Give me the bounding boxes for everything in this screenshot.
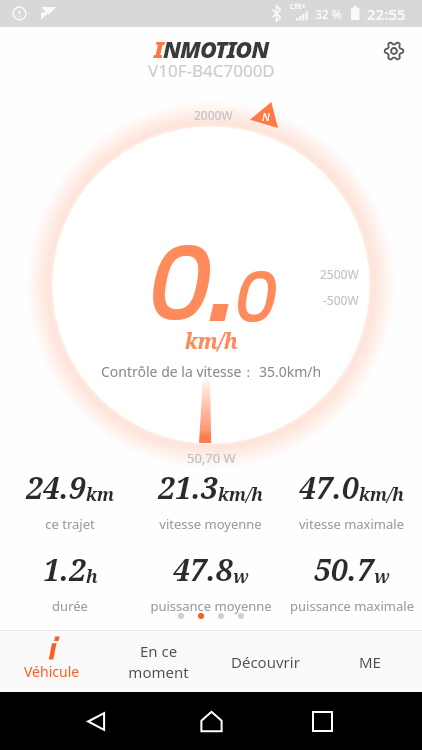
staticText: 0 <box>147 211 214 357</box>
staticText: Véhicule <box>24 662 80 681</box>
staticText: km/h <box>359 482 405 507</box>
staticText: 2000W <box>194 107 233 123</box>
button[interactable]: Back <box>74 699 118 743</box>
staticText: h <box>86 564 98 589</box>
staticText: En ce moment <box>128 641 189 683</box>
staticText: 0 <box>234 250 279 347</box>
button[interactable]: Véhicule <box>0 630 104 692</box>
staticText: km/h <box>218 482 264 507</box>
staticText: V10F-B4C7000D <box>148 59 275 82</box>
staticText: 50.7 <box>314 549 374 590</box>
button[interactable]: Home <box>189 699 233 743</box>
button[interactable]: Recent apps <box>300 699 344 743</box>
staticText: Contrôle de la vitesse： 35.0km/h <box>101 362 322 381</box>
staticText: Découvrir <box>231 652 300 672</box>
staticText: 24.9 <box>26 467 86 508</box>
button[interactable]: ME <box>318 630 422 692</box>
staticText: ME <box>359 652 381 672</box>
staticText: km/h <box>185 327 238 356</box>
staticText: 21.3 <box>158 467 218 508</box>
staticText: w <box>374 564 390 589</box>
staticText: NMOTION <box>163 33 269 64</box>
staticText: ce trajet <box>45 515 95 533</box>
staticText: puissance maximale <box>290 597 414 615</box>
staticText: 2500W <box>320 266 359 282</box>
staticText: puissance moyenne <box>150 597 272 615</box>
staticText: I <box>154 33 163 64</box>
button[interactable]: Découvrir <box>212 630 318 692</box>
staticText: durée <box>52 597 88 615</box>
staticText: -500W <box>323 292 359 308</box>
staticText: km <box>86 482 115 507</box>
staticText: LTE+ <box>290 2 306 12</box>
staticText: 50,70 W <box>187 449 236 467</box>
staticText: 32 % <box>315 6 342 22</box>
button[interactable]: En ce moment <box>104 630 212 692</box>
staticText: 47.0 <box>299 467 359 508</box>
staticText: vitesse moyenne <box>159 515 262 533</box>
staticText: 1.2 <box>43 549 86 590</box>
button[interactable]: Settings <box>378 35 410 67</box>
staticText: w <box>233 564 249 589</box>
staticText: 22:55 <box>367 4 406 24</box>
staticText: N <box>262 109 270 124</box>
staticText: 47.8 <box>173 549 233 590</box>
staticText: vitesse maximale <box>299 515 404 533</box>
